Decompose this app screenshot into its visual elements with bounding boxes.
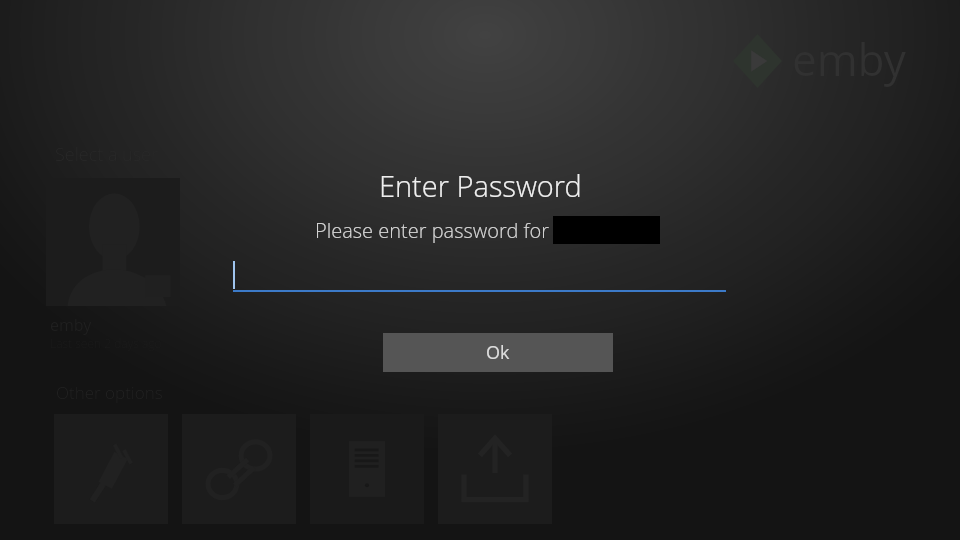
button[interactable]: Password field xyxy=(233,261,726,292)
staticText: Enter Password xyxy=(379,166,582,205)
staticText: Ok xyxy=(486,340,510,365)
staticText: emby xyxy=(792,29,906,89)
staticText: Please enter password for xyxy=(315,217,550,244)
button[interactable]: Ok xyxy=(383,333,613,372)
